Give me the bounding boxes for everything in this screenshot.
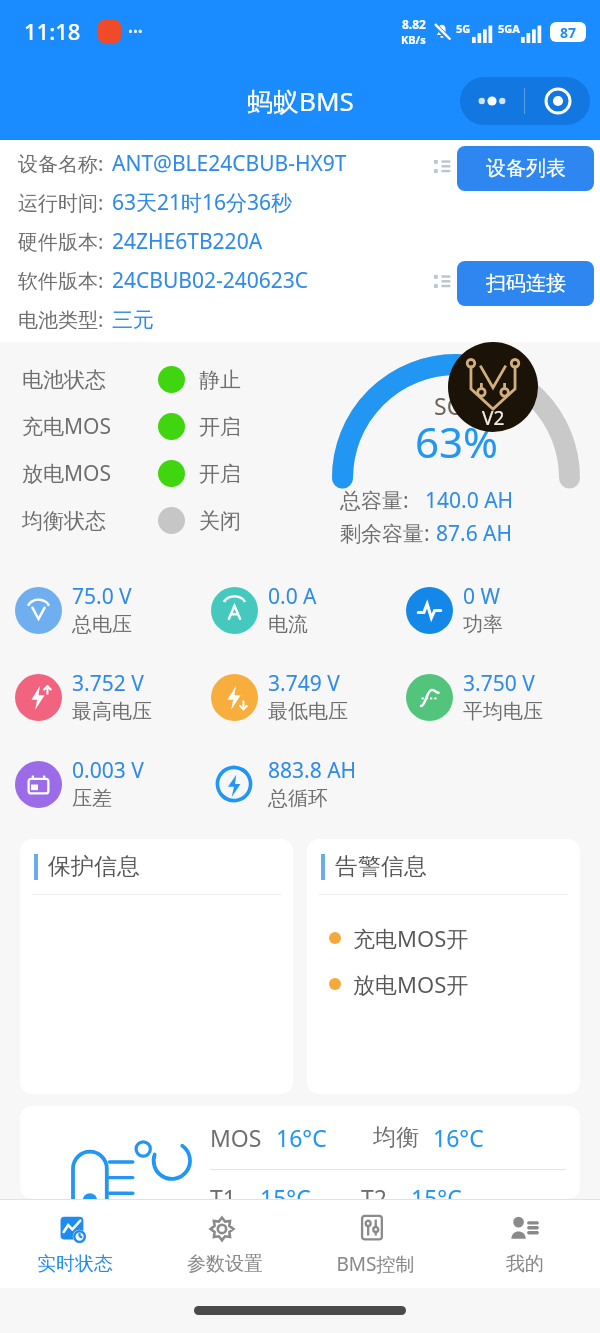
- staticText: 软件版本:: [18, 267, 104, 294]
- staticText: 5G: [456, 21, 471, 36]
- staticText: 0 W: [463, 582, 501, 611]
- staticText: 总容量:: [340, 486, 409, 515]
- staticText: 15°C: [411, 1182, 462, 1199]
- button[interactable]: 我的: [450, 1200, 600, 1288]
- staticText: BMS控制: [336, 1251, 415, 1277]
- staticText: 3.752 V: [72, 669, 144, 698]
- staticText: 静止: [199, 367, 241, 393]
- staticText: 16°C: [276, 1122, 327, 1153]
- staticText: 保护信息: [48, 852, 140, 881]
- staticText: 开启: [199, 414, 241, 440]
- staticText: 87.6 AH: [436, 519, 513, 548]
- staticText: 0.0 A: [268, 582, 317, 611]
- button[interactable]: 0.0 A: [210, 582, 317, 637]
- button[interactable]: 883.8 AH: [210, 756, 357, 811]
- staticText: 24CBUB02-240623C: [112, 266, 309, 295]
- staticText: SOC: [434, 390, 480, 421]
- staticText: 63天21时16分36秒: [112, 188, 293, 217]
- staticText: 参数设置: [187, 1252, 263, 1276]
- staticText: MOS: [210, 1122, 262, 1153]
- button[interactable]: 3.752 V: [14, 669, 152, 724]
- staticText: 硬件版本:: [18, 228, 104, 255]
- button[interactable]: 保护信息: [20, 839, 293, 1094]
- staticText: KB/s: [401, 32, 426, 47]
- staticText: 87: [560, 23, 577, 42]
- button[interactable]: 3.749 V: [210, 669, 348, 724]
- button[interactable]: Close app: [525, 77, 590, 125]
- staticText: 放电MOS: [22, 459, 144, 488]
- button[interactable]: 设备列表: [457, 146, 594, 191]
- staticText: 电池状态: [22, 367, 144, 393]
- staticText: 16°C: [433, 1122, 484, 1153]
- staticText: 告警信息: [335, 852, 427, 881]
- button[interactable]: MOS: [20, 1106, 580, 1199]
- staticText: 最低电压: [268, 699, 348, 724]
- staticText: 关闭: [199, 508, 241, 534]
- button[interactable]: 参数设置: [150, 1200, 300, 1288]
- staticText: 实时状态: [37, 1252, 113, 1276]
- staticText: 15°C: [260, 1182, 311, 1199]
- staticText: 均衡状态: [22, 508, 144, 534]
- staticText: 总循环: [268, 786, 328, 811]
- button[interactable]: 告警信息: [307, 839, 580, 1094]
- button[interactable]: 0.003 V: [14, 756, 144, 811]
- staticText: ANT@BLE24CBUB-HX9T: [112, 149, 347, 178]
- button[interactable]: 实时状态: [0, 1200, 150, 1288]
- staticText: 3.750 V: [463, 669, 535, 698]
- staticText: 三元: [112, 307, 154, 333]
- staticText: 设备列表: [486, 156, 566, 181]
- staticText: 我的: [506, 1252, 544, 1276]
- staticText: 8.82: [402, 16, 426, 32]
- staticText: 0.003 V: [72, 756, 144, 785]
- staticText: 充电MOS: [22, 412, 144, 441]
- button[interactable]: BMS控制: [300, 1200, 450, 1288]
- staticText: 电池类型:: [18, 306, 104, 333]
- staticText: 883.8 AH: [268, 756, 357, 785]
- staticText: 运行时间:: [18, 189, 104, 216]
- staticText: V2: [482, 405, 505, 431]
- staticText: 3.749 V: [268, 669, 340, 698]
- staticText: 压差: [72, 786, 112, 811]
- staticText: 充电MOS开: [353, 923, 469, 953]
- staticText: 11:18: [24, 16, 81, 46]
- staticText: 扫码连接: [486, 271, 566, 296]
- staticText: 5GA: [498, 21, 520, 36]
- staticText: 功率: [463, 612, 503, 637]
- staticText: T2: [361, 1182, 387, 1199]
- button[interactable]: 0 W: [405, 582, 503, 637]
- staticText: 均衡: [373, 1123, 419, 1152]
- staticText: 75.0 V: [72, 582, 132, 611]
- staticText: 平均电压: [463, 699, 543, 724]
- staticText: 设备名称:: [18, 150, 104, 177]
- staticText: 电流: [268, 612, 308, 637]
- staticText: T1: [210, 1182, 236, 1199]
- staticText: 最高电压: [72, 699, 152, 724]
- button[interactable]: More options: [460, 77, 524, 125]
- staticText: 24ZHE6TB220A: [112, 227, 263, 256]
- staticText: 剩余容量:: [340, 519, 430, 548]
- staticText: 放电MOS开: [353, 969, 469, 999]
- staticText: 140.0 AH: [425, 486, 514, 515]
- button[interactable]: 75.0 V: [14, 582, 132, 637]
- button[interactable]: 3.750 V: [405, 669, 543, 724]
- button[interactable]: 扫码连接: [457, 261, 594, 306]
- staticText: 开启: [199, 461, 241, 487]
- staticText: •••: [128, 22, 143, 40]
- staticText: 63%: [415, 413, 498, 470]
- staticText: 蚂蚁BMS: [247, 83, 354, 119]
- button[interactable]: Logo V2: [448, 342, 538, 432]
- staticText: 总电压: [72, 612, 132, 637]
